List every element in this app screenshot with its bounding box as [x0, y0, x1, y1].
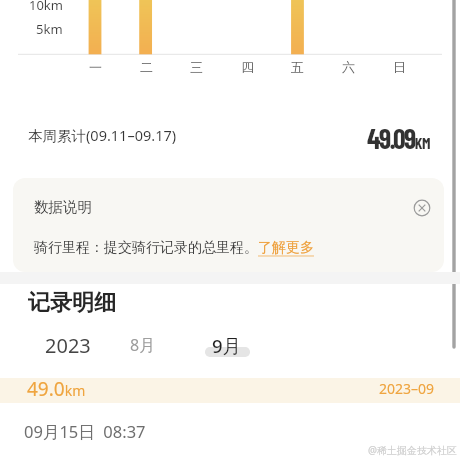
staticText: 日 — [393, 59, 406, 75]
staticText: 一 — [89, 59, 102, 75]
staticText: 本周累计(09.11–09.17) — [28, 125, 177, 145]
button[interactable]: 09月15日 08:37 — [0, 410, 460, 452]
staticText: 5km — [36, 20, 63, 38]
button[interactable]: 2023 — [0, 321, 228, 369]
staticText: 49.0km — [27, 376, 86, 401]
button[interactable]: 9月 — [67, 323, 387, 367]
button[interactable]: 8月 — [0, 326, 303, 364]
staticText: 记录明细 — [28, 289, 116, 317]
staticText: 2023 — [45, 332, 91, 359]
staticText: 09月15日 08:37 — [24, 420, 146, 443]
staticText: 9月 — [212, 333, 242, 358]
button[interactable] — [408, 194, 436, 222]
staticText: 8月 — [130, 334, 156, 356]
staticText: 二 — [140, 59, 153, 75]
button[interactable]: 骑行里程：提交骑行记录的总里程。了解更多 — [34, 239, 314, 257]
staticText: 三 — [190, 59, 203, 75]
staticText: @稀土掘金技术社区 — [368, 443, 457, 457]
staticText: 四 — [241, 59, 254, 75]
staticText: 五 — [291, 59, 304, 75]
staticText: 49.09KM — [367, 121, 431, 151]
staticText: 2023–09 — [379, 379, 435, 398]
button[interactable] — [0, 378, 460, 403]
staticText: 六 — [342, 59, 355, 75]
staticText: 数据说明 — [34, 198, 92, 216]
staticText: 10km — [29, 0, 63, 14]
